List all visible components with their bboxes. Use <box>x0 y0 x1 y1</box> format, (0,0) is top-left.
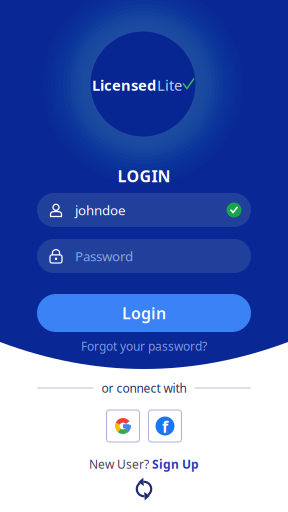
staticText: Password <box>75 247 133 265</box>
staticText: or connect with <box>101 380 186 396</box>
staticText: Lite <box>157 75 182 95</box>
staticText: johndoe <box>75 201 126 219</box>
button[interactable]: Forgot your password? <box>81 338 207 354</box>
button[interactable]: Sign in with Google <box>106 410 139 442</box>
staticText: Sign Up <box>152 456 199 472</box>
staticText: Login <box>122 302 166 324</box>
button[interactable]: New User? <box>89 456 199 472</box>
staticText: New User? <box>89 456 149 472</box>
button[interactable]: Sign in with Facebook <box>148 410 181 442</box>
button[interactable]: Login <box>37 294 251 332</box>
staticText: Forgot your password? <box>81 338 207 354</box>
staticText: LOGIN <box>117 165 170 187</box>
staticText: Licensed <box>92 75 156 95</box>
staticText: f <box>162 416 168 437</box>
